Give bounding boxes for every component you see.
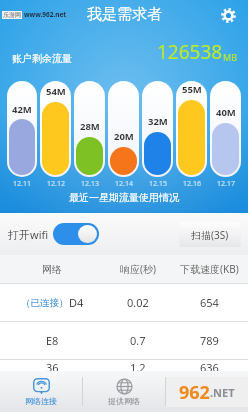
staticText: www.962.net: [24, 10, 67, 19]
staticText: 654: [200, 295, 219, 310]
staticText: 12.16: [183, 179, 201, 189]
button[interactable]: 提供网络: [83, 371, 165, 412]
staticText: 12.14: [115, 179, 133, 189]
staticText: 我是需求者: [87, 5, 162, 24]
button[interactable]: 打开wifi: [8, 223, 99, 245]
staticText: 乐游网: [3, 11, 21, 19]
staticText: 网络连接: [25, 396, 57, 406]
staticText: .NET: [210, 385, 235, 400]
staticText: 789: [200, 333, 219, 348]
staticText: 最近一星期流量使用情况: [0, 191, 248, 204]
staticText: 12.15: [149, 179, 167, 189]
staticText: 0.02: [127, 295, 149, 310]
button[interactable]: 36: [0, 360, 248, 371]
staticText: 0.7: [130, 333, 146, 348]
staticText: 55M: [182, 83, 202, 96]
staticText: 网络: [42, 263, 62, 276]
button[interactable]: E8: [0, 322, 248, 359]
staticText: 12.13: [81, 179, 99, 189]
staticText: 32M: [148, 115, 168, 128]
staticText: 54M: [46, 85, 66, 98]
staticText: 42M: [12, 103, 32, 116]
staticText: 提供网络: [108, 396, 140, 406]
button[interactable]: Settings: [214, 1, 242, 29]
staticText: 962: [179, 380, 210, 405]
staticText: 12.12: [47, 179, 65, 189]
staticText: D4: [69, 295, 84, 310]
staticText: 126538: [157, 39, 223, 65]
staticText: 636: [200, 360, 219, 371]
staticText: MB: [223, 51, 238, 63]
staticText: 扫描(3S): [191, 228, 229, 242]
staticText: 账户剩余流量: [12, 52, 72, 65]
staticText: 20M: [114, 130, 134, 143]
staticText: E8: [46, 333, 59, 348]
staticText: 1.2: [130, 360, 146, 371]
staticText: 36: [46, 360, 59, 371]
button[interactable]: 网络连接: [0, 371, 82, 412]
button[interactable]: 扫描(3S): [179, 222, 241, 247]
staticText: 40M: [216, 106, 236, 119]
staticText: 响应(秒): [120, 262, 156, 276]
staticText: 下载速度(KB): [180, 262, 239, 276]
button[interactable]: More: [166, 371, 248, 412]
staticText: 12.17: [217, 179, 235, 189]
staticText: 打开wifi: [8, 227, 49, 242]
staticText: 12.11: [13, 179, 31, 189]
staticText: （已连接）: [21, 297, 69, 309]
staticText: 28M: [80, 120, 100, 133]
button[interactable]: （已连接）: [0, 284, 248, 321]
